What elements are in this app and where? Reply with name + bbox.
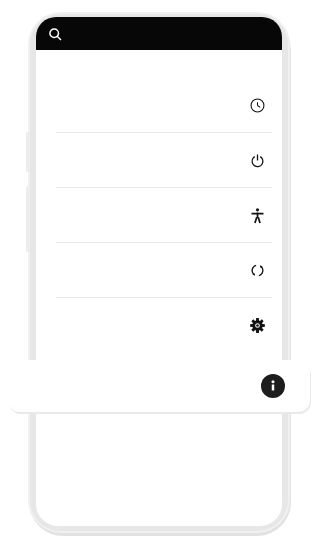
button[interactable]: Accessibility	[36, 198, 282, 231]
button[interactable]: Search	[41, 20, 69, 48]
other: Power	[244, 147, 270, 173]
other: Settings	[244, 312, 270, 338]
button[interactable]: Sync	[36, 253, 282, 286]
button[interactable]: Info	[261, 374, 285, 398]
button[interactable]: Power	[36, 143, 282, 176]
button[interactable]: Settings	[36, 308, 282, 341]
other: Sync	[244, 257, 270, 283]
other: Accessibility	[244, 202, 270, 228]
button[interactable]: Info	[8, 360, 310, 412]
other: Clock	[244, 92, 270, 118]
button[interactable]: Clock	[36, 88, 282, 121]
